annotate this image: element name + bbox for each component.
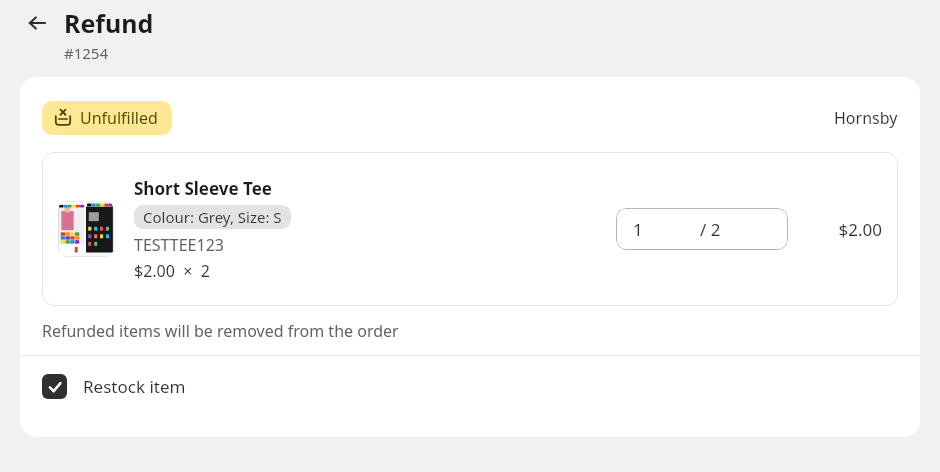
staticText: Short Sleeve Tee <box>134 177 273 200</box>
staticText: $2.00 × 2 <box>134 260 210 282</box>
staticText: $2.00 <box>838 218 882 241</box>
staticText: 1 <box>633 218 643 241</box>
other: Restock item checkbox <box>42 374 67 399</box>
staticText: Colour: Grey, Size: S <box>143 207 282 227</box>
staticText: / 2 <box>700 218 721 241</box>
button[interactable]: Restock item checkbox <box>20 374 920 399</box>
button[interactable]: Unfulfilled <box>42 101 172 135</box>
staticText: Refund <box>64 6 154 40</box>
staticText: Hornsby <box>834 107 898 129</box>
staticText: Restock item <box>83 375 186 398</box>
staticText: Unfulfilled <box>80 107 158 129</box>
button[interactable]: Back <box>22 8 52 38</box>
staticText: Refunded items will be removed from the … <box>42 320 399 342</box>
button[interactable]: 1 <box>616 208 788 250</box>
staticText: TESTTEE123 <box>134 234 224 256</box>
staticText: #1254 <box>64 43 109 63</box>
